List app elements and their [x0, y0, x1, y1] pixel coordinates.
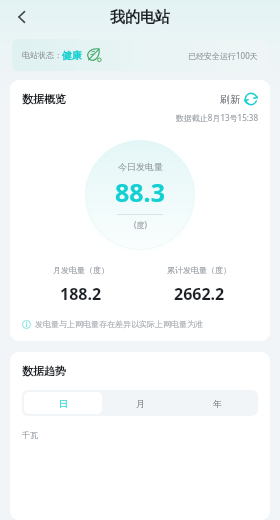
staticText: 2662.2 — [174, 283, 225, 305]
staticText: 日 — [59, 398, 68, 409]
button[interactable]: Back — [6, 1, 38, 33]
staticText: 累计发电量（度） — [167, 265, 231, 275]
staticText: 刷新 — [220, 93, 240, 106]
staticText: 数据截止8月13号15:38 — [22, 112, 258, 123]
button[interactable]: 月 — [102, 392, 179, 414]
button[interactable]: 刷新 — [220, 92, 258, 106]
button[interactable]: 日 — [24, 392, 102, 414]
button[interactable]: 电站状态： — [12, 39, 268, 71]
staticText: 发电量与上网电量存在差异以实际上网电量为准 — [35, 319, 203, 329]
staticText: 88.3 — [115, 175, 165, 209]
staticText: 年 — [213, 398, 222, 409]
staticText: 我的电站 — [110, 8, 170, 27]
staticText: 健康 — [62, 49, 82, 62]
staticText: 数据趋势 — [22, 364, 66, 378]
staticText: 已经安全运行100天 — [188, 50, 258, 61]
staticText: 月发电量（度） — [53, 265, 109, 275]
staticText: 数据概览 — [22, 92, 66, 106]
staticText: 千瓦 — [22, 430, 38, 440]
staticText: (度) — [134, 219, 147, 230]
button[interactable]: 年 — [179, 392, 256, 414]
staticText: 今日发电量 — [118, 161, 163, 172]
staticText: 电站状态： — [22, 50, 62, 60]
staticText: 188.2 — [60, 283, 102, 305]
staticText: 月 — [136, 398, 145, 409]
